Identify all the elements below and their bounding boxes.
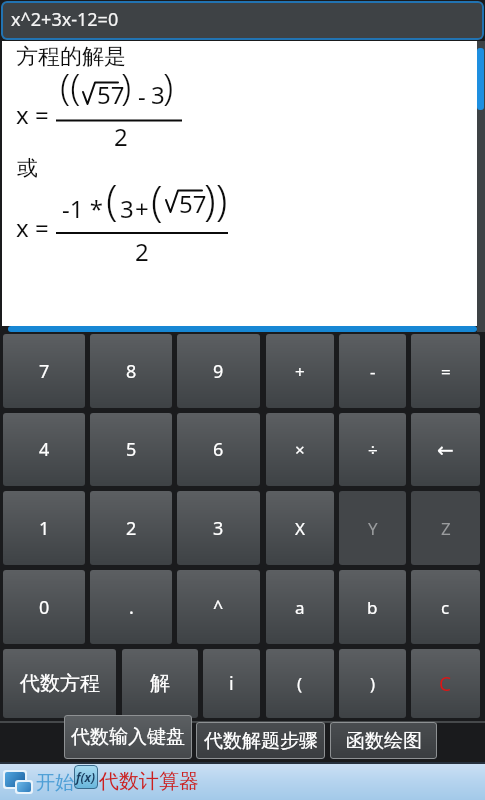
staticText: )	[163, 60, 174, 110]
button[interactable]: 9	[177, 334, 260, 408]
button[interactable]: x^2+3x-12=0	[1, 1, 484, 40]
staticText: x^2+3x-12=0	[11, 7, 119, 32]
button[interactable]: 代数方程	[3, 649, 116, 718]
staticText: )	[121, 60, 132, 110]
staticText: x	[16, 98, 29, 131]
button[interactable]: Z	[411, 491, 480, 565]
staticText: -	[138, 79, 146, 112]
staticText: (	[151, 171, 163, 228]
staticText: Y	[368, 517, 378, 540]
staticText: 2	[126, 516, 137, 541]
staticText: ((	[60, 60, 81, 110]
staticText: =	[441, 360, 451, 383]
staticText: 代数解题步骤	[204, 729, 318, 753]
button[interactable]: 7	[3, 334, 85, 408]
staticText: ÷	[368, 438, 378, 461]
staticText: x	[16, 211, 29, 244]
staticText: a	[295, 596, 305, 619]
staticText: 代数方程	[20, 671, 100, 696]
staticText: )	[370, 672, 376, 695]
staticText: 5	[126, 437, 137, 462]
staticText: 9	[213, 359, 224, 384]
staticText: -1 *	[62, 192, 103, 225]
button[interactable]: 0	[3, 570, 85, 644]
staticText: 57	[97, 78, 125, 111]
staticText: 2	[114, 120, 128, 153]
button[interactable]: X	[266, 491, 334, 565]
staticText: 或	[17, 155, 38, 181]
staticText: b	[367, 596, 378, 619]
staticText: +	[295, 360, 305, 383]
staticText: i	[229, 671, 234, 696]
staticText: 开始	[36, 771, 74, 795]
button[interactable]: 代数输入键盘	[64, 715, 192, 759]
staticText: 代数输入键盘	[71, 725, 185, 749]
staticText: 代数计算器	[99, 769, 199, 794]
staticText: 解	[150, 671, 170, 696]
button[interactable]: c	[411, 570, 480, 644]
button[interactable]: 代数计算器	[99, 769, 209, 797]
button[interactable]: 函数绘图	[330, 722, 437, 759]
button[interactable]: +	[266, 334, 334, 408]
button[interactable]: 代数解题步骤	[196, 722, 325, 759]
button[interactable]: 8	[90, 334, 172, 408]
staticText: 6	[213, 437, 224, 462]
staticText: (	[106, 170, 118, 227]
staticText: ^	[213, 595, 224, 620]
button[interactable]: f(x)	[74, 765, 98, 789]
staticText: =	[35, 98, 49, 131]
staticText: =	[35, 211, 49, 244]
button[interactable]: (	[266, 649, 334, 718]
button[interactable]: a	[266, 570, 334, 644]
staticText: 3	[213, 516, 224, 541]
button[interactable]: 5	[90, 413, 172, 486]
button[interactable]: ×	[266, 413, 334, 486]
staticText: ←	[437, 438, 454, 461]
staticText: 2	[135, 235, 149, 268]
button[interactable]: .	[90, 570, 172, 644]
staticText: C	[439, 671, 452, 697]
staticText: 8	[126, 359, 137, 384]
button[interactable]: 6	[177, 413, 260, 486]
staticText: Z	[441, 517, 451, 540]
staticText: ×	[295, 438, 305, 461]
button[interactable]: 开始	[36, 771, 80, 797]
staticText: 0	[39, 595, 50, 620]
staticText: .	[129, 595, 134, 620]
button[interactable]: ÷	[339, 413, 406, 486]
staticText: 1	[39, 516, 50, 541]
button[interactable]: b	[339, 570, 406, 644]
button[interactable]: =	[411, 334, 480, 408]
button[interactable]: 2	[90, 491, 172, 565]
button[interactable]: ←	[411, 413, 480, 486]
staticText: (	[297, 672, 303, 695]
button[interactable]: 4	[3, 413, 85, 486]
staticText: 7	[39, 359, 50, 384]
button[interactable]: 3	[177, 491, 260, 565]
staticText: 4	[39, 437, 50, 462]
staticText: f(x)	[76, 769, 96, 785]
button[interactable]: Y	[339, 491, 406, 565]
button[interactable]: 1	[3, 491, 85, 565]
staticText: c	[441, 596, 450, 619]
staticText: X	[295, 517, 305, 540]
staticText: 3	[120, 192, 134, 225]
staticText: 3	[151, 78, 165, 111]
button[interactable]: 解	[122, 649, 198, 718]
button[interactable]: )	[339, 649, 406, 718]
staticText: ))	[204, 170, 228, 227]
staticText: -	[370, 360, 376, 383]
staticText: 方程的解是	[16, 43, 126, 71]
button[interactable]: -	[339, 334, 406, 408]
button[interactable]: ^	[177, 570, 260, 644]
staticText: 57	[179, 187, 207, 220]
button[interactable]: i	[203, 649, 260, 718]
staticText: 函数绘图	[346, 729, 422, 753]
button[interactable]: C	[411, 649, 480, 718]
staticText: +	[135, 192, 149, 225]
